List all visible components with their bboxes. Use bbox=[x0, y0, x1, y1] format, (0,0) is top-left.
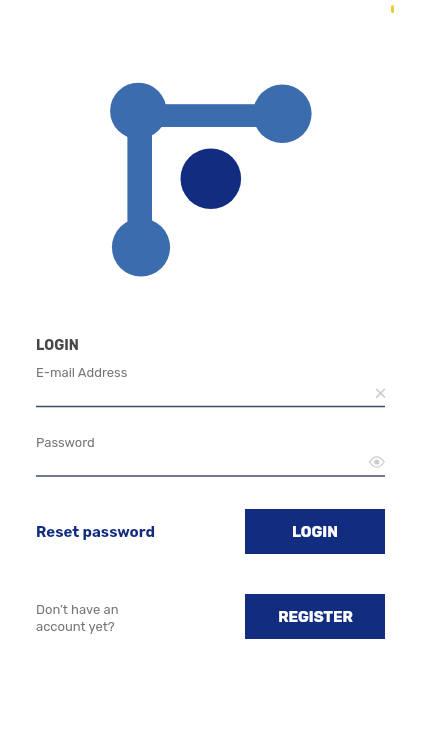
staticText: Reset password bbox=[36, 523, 155, 541]
button[interactable]: Clear e-mail address bbox=[373, 386, 388, 401]
staticText: REGISTER bbox=[278, 608, 353, 626]
button[interactable]: Reset password bbox=[36, 519, 176, 545]
button[interactable]: Show password bbox=[369, 454, 385, 470]
staticText: E-mail Address bbox=[36, 365, 128, 380]
staticText: LOGIN bbox=[36, 337, 79, 354]
staticText: Don’t have an account yet? bbox=[36, 602, 186, 634]
staticText: LOGIN bbox=[292, 523, 338, 541]
button[interactable]: LOGIN bbox=[245, 509, 385, 554]
staticText: Password bbox=[36, 435, 95, 450]
button[interactable]: REGISTER bbox=[245, 594, 385, 639]
